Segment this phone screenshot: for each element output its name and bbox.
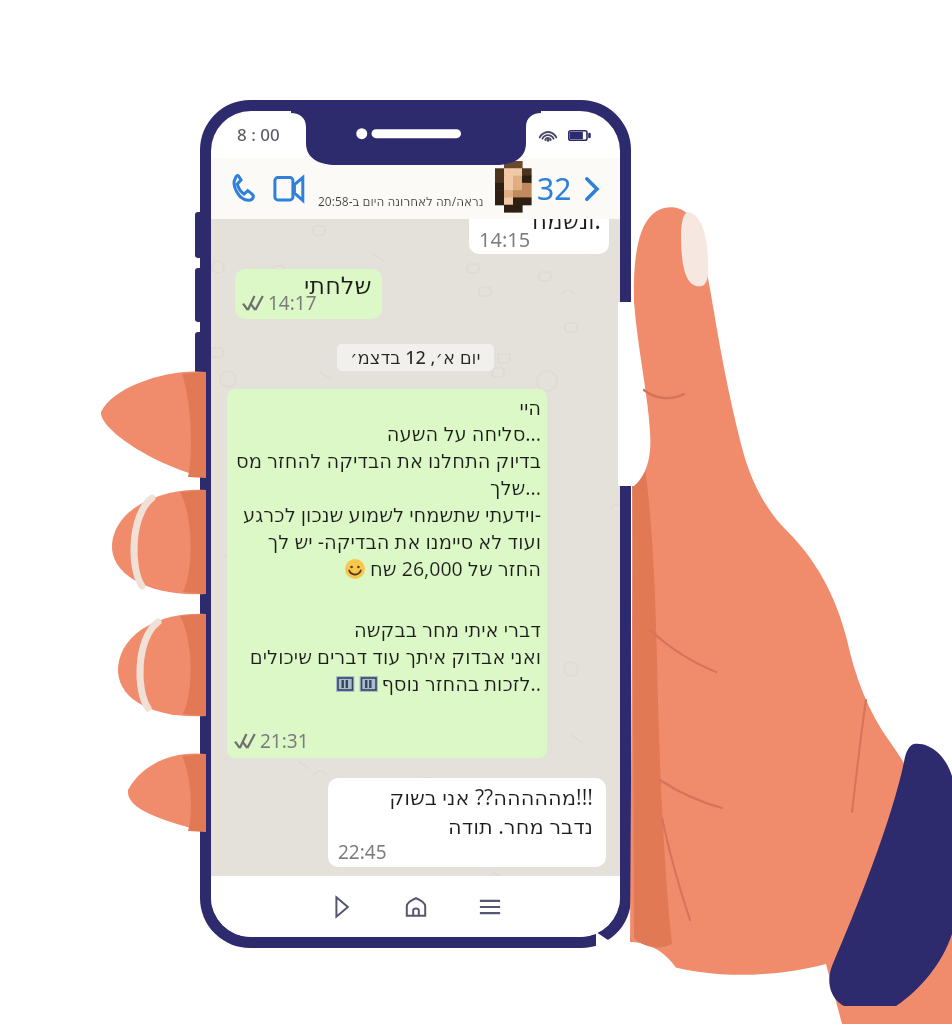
staticText: מההההה?? אני בשוק!!! <box>389 783 593 812</box>
staticText: סליחה על השעה... <box>386 420 541 447</box>
staticText: דברי איתי מחר בבקשה <box>354 616 541 643</box>
staticText: וידעתי שתשמחי לשמוע שנכון לכרגע- <box>243 501 541 528</box>
staticText: יום א׳, 12 בדצמ׳ <box>350 345 481 370</box>
staticText: נראה/תה לאחרונה היום ב-20:58 <box>318 193 484 209</box>
button[interactable]: Back <box>319 884 365 930</box>
button[interactable]: שלחתי <box>235 269 382 319</box>
staticText: בדיוק התחלנו את הבדיקה להחזר מס <box>236 447 541 474</box>
button[interactable]: Voice call <box>225 171 261 207</box>
staticText: 14:15 <box>479 226 531 253</box>
button[interactable]: Video call <box>271 171 307 207</box>
staticText: 21:31 <box>260 728 309 754</box>
button[interactable]: ונשמח. <box>469 219 609 254</box>
staticText: החזר של 26,000 שח <box>370 555 541 582</box>
staticText: ועוד לא סיימנו את הבדיקה- יש לך <box>267 528 541 555</box>
button[interactable]: מההההה?? אני בשוק!!! <box>328 778 606 867</box>
staticText: נדבר מחר. תודה <box>448 812 593 841</box>
staticText: 8 : 00 <box>237 123 280 146</box>
button[interactable]: Recent apps <box>467 884 513 930</box>
button[interactable]: 32 <box>535 168 608 209</box>
staticText: 22:45 <box>338 839 387 865</box>
staticText: 14:17 <box>268 290 317 316</box>
staticText: היי <box>519 397 541 420</box>
button[interactable]: היי <box>227 389 547 758</box>
staticText: שלך... <box>489 474 541 501</box>
staticText: לזכות בהחזר נוסף.. <box>381 670 541 697</box>
staticText: שלחתי <box>304 272 372 300</box>
staticText: ואני אבדוק איתך עוד דברים שיכולים <box>249 643 541 670</box>
staticText: ונשמח. <box>532 219 601 235</box>
staticText: 32 <box>537 168 572 209</box>
button[interactable]: Contact photo <box>495 161 531 212</box>
button[interactable]: Home <box>393 884 439 930</box>
